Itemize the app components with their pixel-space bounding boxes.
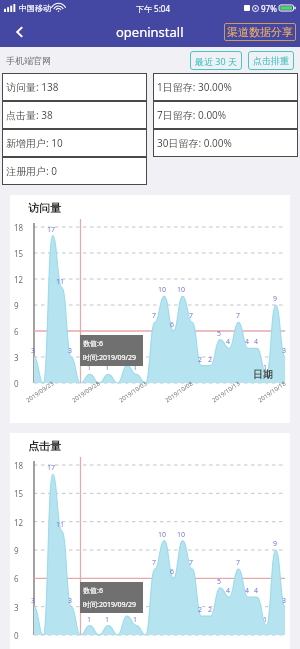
staticText: openinstall	[116, 23, 184, 41]
staticText: 新增用户: 10	[6, 136, 63, 150]
staticText: 2019/10/13	[211, 379, 241, 404]
staticText: 7	[189, 311, 194, 321]
staticText: 18	[14, 222, 24, 233]
staticText: 7	[236, 558, 241, 568]
staticText: 2019/09/28	[71, 379, 101, 404]
staticText: 渠道数据分享	[227, 25, 293, 39]
staticText: 9	[14, 300, 19, 311]
staticText: 2	[208, 355, 213, 365]
staticText: 1	[133, 615, 138, 625]
staticText: 15	[14, 248, 24, 259]
staticText: 手机端官网	[6, 55, 51, 66]
staticText: 9	[273, 539, 278, 549]
staticText: 1	[133, 363, 138, 373]
staticText: 9	[14, 545, 19, 556]
staticText: 1日留存: 30.00%	[157, 80, 232, 94]
staticText: 10	[158, 530, 167, 540]
staticText: 2	[124, 605, 129, 615]
staticText: 1	[87, 615, 92, 625]
button[interactable]: 最近 30 天	[190, 51, 242, 70]
staticText: 下午 5:04	[136, 3, 170, 14]
staticText: 1	[105, 363, 110, 373]
button[interactable]: 点击量	[10, 433, 290, 649]
staticText: 12	[14, 274, 24, 285]
staticText: 点击量	[28, 439, 61, 453]
staticText: 1	[87, 363, 92, 373]
staticText: 2	[198, 605, 203, 615]
staticText: 7日留存: 0.00%	[157, 108, 227, 122]
staticText: 时间:2019/09/29	[83, 353, 137, 363]
staticText: 6	[14, 326, 19, 337]
staticText: 访问量: 138	[6, 80, 59, 94]
staticText: 17	[47, 225, 56, 235]
button[interactable]: 1日留存: 30.00%	[153, 73, 298, 101]
staticText: 2	[124, 355, 129, 365]
button[interactable]: 访问量: 138	[2, 73, 147, 101]
staticText: 7	[152, 311, 157, 321]
staticText: 10	[177, 530, 186, 540]
staticText: 2019/10/08	[164, 379, 194, 404]
staticText: 3	[14, 602, 19, 613]
staticText: 4	[245, 586, 250, 596]
staticText: 97%	[261, 3, 277, 14]
staticText: 4	[254, 586, 259, 596]
staticText: 1	[263, 615, 268, 625]
button[interactable]: 7日留存: 0.00%	[153, 101, 298, 129]
staticText: 2019/09/23	[25, 379, 55, 404]
staticText: 3	[68, 596, 73, 606]
staticText: 2019/10/18	[257, 379, 287, 404]
staticText: 0	[14, 378, 19, 389]
staticText: 30日留存: 0.00%	[157, 136, 232, 150]
staticText: 0	[14, 630, 19, 641]
staticText: 点击排重	[253, 55, 289, 66]
staticText: 3	[282, 346, 287, 356]
staticText: 时间:2019/09/29	[83, 600, 137, 610]
staticText: 点击量: 38	[6, 108, 53, 122]
staticText: 17	[47, 463, 56, 473]
staticText: 10	[177, 285, 186, 295]
staticText: 4	[254, 337, 259, 347]
staticText: 10	[158, 285, 167, 295]
staticText: 3	[31, 596, 36, 606]
staticText: 15	[14, 488, 24, 499]
staticText: 3	[31, 346, 36, 356]
staticText: 2019/10/03	[118, 379, 148, 404]
staticText: 4	[245, 337, 250, 347]
button[interactable]: 新增用户: 10	[2, 129, 147, 157]
staticText: 数值:6	[83, 586, 103, 596]
staticText: 7	[236, 311, 241, 321]
staticText: 数值:6	[83, 339, 103, 349]
staticText: 日期	[253, 368, 273, 381]
staticText: 9	[273, 294, 278, 304]
staticText: 3	[68, 346, 73, 356]
staticText: 4	[226, 586, 231, 596]
staticText: 5	[217, 329, 222, 339]
button[interactable]: 访问量	[10, 195, 290, 423]
button[interactable]: 30日留存: 0.00%	[153, 129, 298, 157]
staticText: 12	[14, 517, 24, 528]
staticText: 11	[56, 520, 65, 530]
staticText: 最近 30 天	[195, 55, 237, 67]
staticText: 6	[14, 573, 19, 584]
staticText: 7	[189, 558, 194, 568]
staticText: 7	[152, 558, 157, 568]
staticText: 1	[263, 363, 268, 373]
staticText: 6	[170, 567, 175, 577]
staticText: 中国移动	[19, 3, 51, 13]
staticText: 4	[226, 337, 231, 347]
staticText: 6	[170, 320, 175, 330]
staticText: 2	[208, 605, 213, 615]
staticText: 18	[14, 460, 24, 471]
staticText: 访问量	[28, 201, 61, 215]
staticText: 3	[282, 596, 287, 606]
button[interactable]: 点击量: 38	[2, 101, 147, 129]
staticText: 3	[14, 352, 19, 363]
button[interactable]: 点击排重	[248, 51, 294, 70]
staticText: 注册用户: 0	[6, 164, 57, 178]
button[interactable]: 注册用户: 0	[2, 157, 147, 185]
staticText: 1	[105, 615, 110, 625]
staticText: 5	[217, 577, 222, 587]
button[interactable]: Back	[0, 16, 40, 47]
staticText: 2	[198, 355, 203, 365]
button[interactable]: 渠道数据分享	[224, 23, 296, 41]
